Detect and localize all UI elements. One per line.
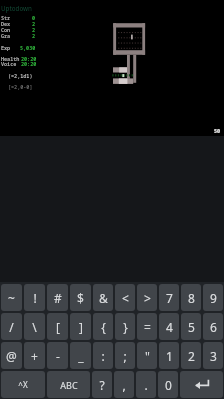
- staticText: +: [31, 348, 38, 364]
- button[interactable]: 7: [159, 284, 179, 311]
- button[interactable]: /: [1, 313, 22, 340]
- staticText: 0: [165, 377, 172, 393]
- staticText: (=2,1d1): [8, 73, 33, 80]
- staticText: ABC: [60, 379, 78, 391]
- staticText: 5: [188, 319, 195, 335]
- staticText: Exp: [1, 45, 11, 52]
- button[interactable]: 3: [203, 342, 223, 369]
- staticText: Dex: [1, 21, 11, 28]
- button[interactable]: 6: [203, 313, 223, 340]
- button[interactable]: =: [137, 313, 157, 340]
- button[interactable]: _: [70, 342, 91, 369]
- button[interactable]: 4: [159, 313, 179, 340]
- staticText: ": [145, 348, 150, 364]
- staticText: [=2,0-0]: [8, 84, 33, 91]
- staticText: !: [33, 290, 37, 306]
- staticText: ;: [123, 348, 127, 364]
- staticText: &: [99, 290, 108, 306]
- staticText: 20:20: [21, 56, 37, 63]
- button[interactable]: #: [47, 284, 68, 311]
- button[interactable]: +: [24, 342, 45, 369]
- button[interactable]: 5: [181, 313, 201, 340]
- staticText: /: [9, 319, 14, 335]
- button[interactable]: 8: [181, 284, 201, 311]
- button[interactable]: 2: [181, 342, 201, 369]
- staticText: 20:20: [21, 61, 37, 68]
- staticText: Con: [1, 27, 11, 34]
- button[interactable]: <: [115, 284, 135, 311]
- staticText: -: [56, 348, 60, 364]
- button[interactable]: &: [93, 284, 113, 311]
- button[interactable]: [: [47, 313, 68, 340]
- staticText: ~: [8, 290, 15, 306]
- staticText: <: [122, 290, 129, 306]
- staticText: 1: [166, 348, 173, 364]
- staticText: 7: [166, 290, 173, 306]
- button[interactable]: !: [24, 284, 45, 311]
- button[interactable]: \: [24, 313, 45, 340]
- staticText: 3: [210, 348, 217, 364]
- button[interactable]: ,: [114, 371, 134, 398]
- button[interactable]: 0: [158, 371, 178, 398]
- staticText: Str: [1, 15, 11, 22]
- button[interactable]: >: [137, 284, 157, 311]
- staticText: }: [123, 319, 128, 335]
- staticText: 2: [32, 27, 36, 34]
- staticText: :: [101, 348, 105, 364]
- button[interactable]: ^X: [1, 371, 45, 398]
- staticText: Gra: [1, 33, 11, 40]
- staticText: ^X: [18, 379, 28, 390]
- staticText: 4: [166, 319, 173, 335]
- staticText: 5,030: [20, 45, 36, 52]
- staticText: #: [54, 290, 62, 306]
- staticText: ,: [122, 377, 126, 393]
- staticText: _: [78, 348, 84, 364]
- button[interactable]: ;: [115, 342, 135, 369]
- button[interactable]: ?: [92, 371, 112, 398]
- staticText: 2: [32, 21, 36, 28]
- staticText: 6: [210, 319, 217, 335]
- staticText: .: [144, 377, 148, 393]
- staticText: \: [32, 319, 37, 335]
- button[interactable]: 1: [159, 342, 179, 369]
- staticText: >: [144, 290, 151, 306]
- staticText: 2: [188, 348, 195, 364]
- button[interactable]: ": [137, 342, 157, 369]
- button[interactable]: 9: [203, 284, 223, 311]
- staticText: @: [6, 348, 17, 364]
- staticText: 0: [32, 15, 36, 22]
- staticText: 9: [210, 290, 217, 306]
- button[interactable]: .: [136, 371, 156, 398]
- staticText: Voice: [1, 61, 17, 68]
- button[interactable]: {: [93, 313, 113, 340]
- staticText: =: [144, 319, 151, 335]
- button[interactable]: ]: [70, 313, 91, 340]
- staticText: $: [77, 290, 84, 306]
- staticText: Uptodown: [1, 4, 32, 12]
- button[interactable]: :: [93, 342, 113, 369]
- button[interactable]: ~: [1, 284, 22, 311]
- staticText: {: [101, 319, 106, 335]
- button[interactable]: @: [1, 342, 22, 369]
- button[interactable]: -: [47, 342, 68, 369]
- button[interactable]: $: [70, 284, 91, 311]
- button[interactable]: ABC: [47, 371, 90, 398]
- staticText: 8: [188, 290, 195, 306]
- staticText: 50: [214, 128, 221, 135]
- staticText: ?: [99, 377, 105, 393]
- button[interactable]: Enter: [180, 371, 223, 398]
- staticText: 2: [32, 33, 36, 40]
- staticText: [: [56, 319, 60, 335]
- staticText: ]: [79, 319, 83, 335]
- button[interactable]: }: [115, 313, 135, 340]
- staticText: Health: [1, 56, 20, 63]
